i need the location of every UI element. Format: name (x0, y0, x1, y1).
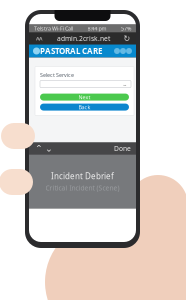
staticText: ⌃ (35, 143, 43, 154)
staticText: 8:44 pm (87, 25, 106, 32)
button[interactable]: AA (33, 35, 45, 42)
button[interactable]: Previous field (34, 143, 44, 153)
staticText: ⌄ (45, 143, 53, 154)
button[interactable]: Next field (44, 143, 54, 153)
staticText: Telstra Wi-Fi Call (34, 25, 73, 32)
staticText: AA (36, 35, 42, 42)
button[interactable]: Done (114, 143, 131, 153)
staticText: ⌄ (122, 80, 128, 88)
staticText: admin.2crisk.net (57, 34, 110, 43)
staticText: PASTORAL CARE (40, 46, 102, 56)
button[interactable]: Next (40, 94, 129, 101)
staticText: Back (78, 103, 90, 111)
staticText: Done (114, 144, 131, 153)
staticText: 57% (121, 25, 131, 32)
staticText: Critical Incident (Scene) (45, 183, 119, 192)
staticText: ↻ (123, 34, 130, 43)
button[interactable]: Back (40, 104, 129, 111)
staticText: Next (78, 93, 90, 101)
button[interactable]: Reload (122, 34, 132, 42)
staticText: Incident Debrief (51, 171, 114, 181)
staticText: Select Service (40, 71, 74, 79)
